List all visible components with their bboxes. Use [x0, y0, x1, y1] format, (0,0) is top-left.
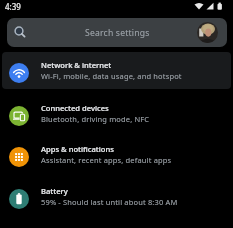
staticText: Apps & notifications: [41, 144, 114, 154]
button[interactable]: Search settings: [7, 18, 227, 47]
staticText: Wi-Fi, mobile, data usage, and hotspot: [41, 71, 182, 81]
staticText: Search settings: [85, 27, 150, 39]
button[interactable]: Connected devices: [0, 95, 233, 138]
button[interactable]: Network & internet: [0, 52, 233, 95]
staticText: Assistant, recent apps, default apps: [41, 155, 172, 165]
staticText: 4:39: [5, 1, 21, 12]
staticText: Bluetooth, driving mode, NFC: [41, 114, 150, 124]
staticText: Connected devices: [41, 103, 109, 113]
staticText: Battery: [41, 186, 68, 196]
button[interactable]: Apps & notifications: [0, 136, 233, 179]
button[interactable]: [197, 22, 218, 43]
staticText: Network & internet: [41, 60, 112, 70]
button[interactable]: Battery: [0, 178, 233, 221]
staticText: 59% - Should last until about 8:30 AM: [41, 197, 178, 207]
